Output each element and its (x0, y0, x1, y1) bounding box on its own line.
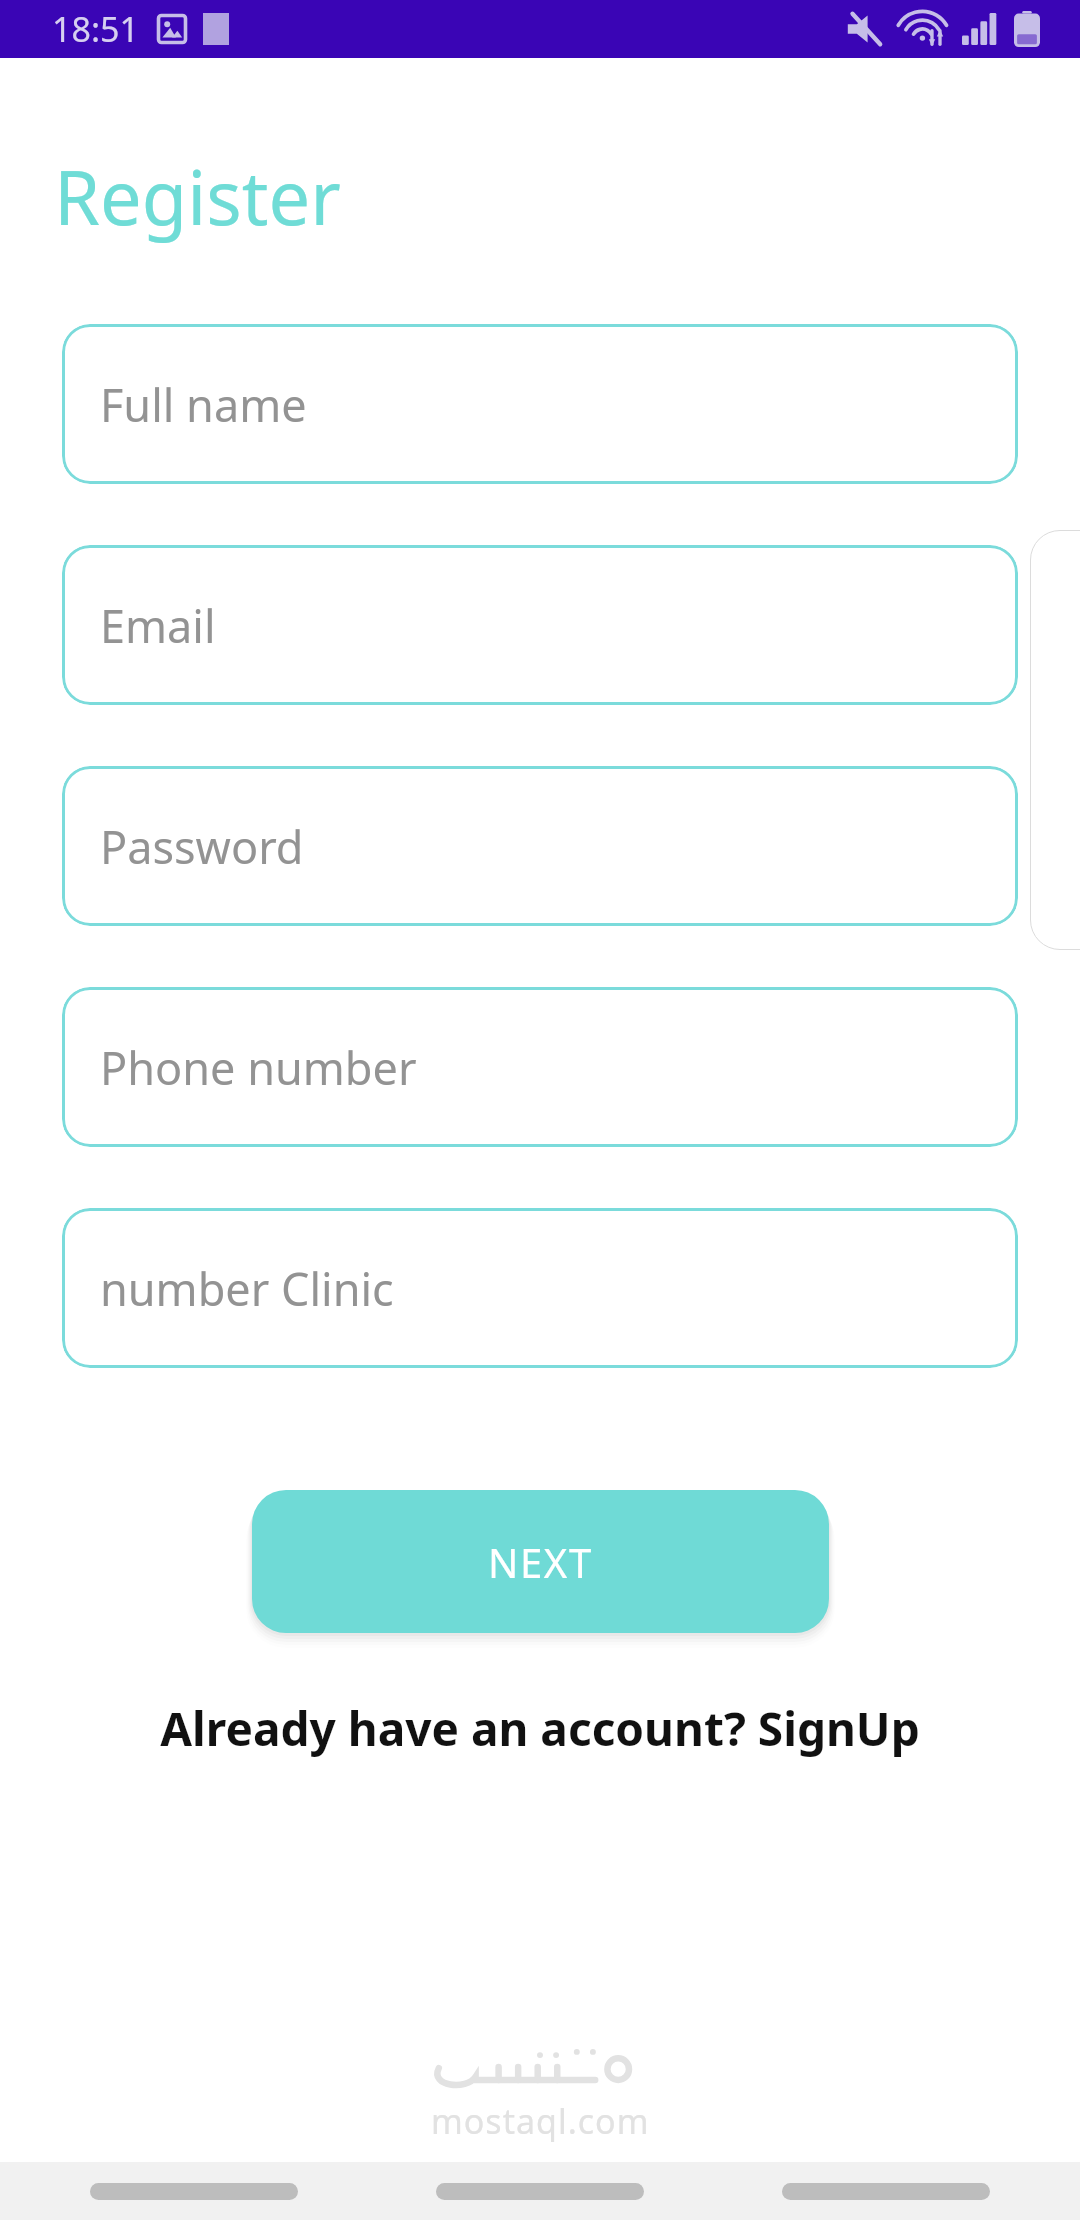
staticText: mostaql.com (431, 2098, 650, 2144)
staticText: Full name (100, 374, 307, 435)
staticText: Password (100, 816, 304, 877)
staticText: number Clinic (100, 1258, 394, 1319)
button[interactable]: Email (62, 545, 1018, 705)
button[interactable]: Password (62, 766, 1018, 926)
staticText: Already have an account? SignUp (160, 1697, 920, 1760)
staticText: Phone number (100, 1037, 417, 1098)
staticText: Email (100, 595, 216, 656)
button[interactable]: Full name (62, 324, 1018, 484)
button[interactable]: Recents (782, 2183, 990, 2200)
button[interactable]: Already have an account? SignUp (0, 1697, 1080, 1760)
button[interactable]: Home (436, 2183, 644, 2200)
button[interactable]: number Clinic (62, 1208, 1018, 1368)
button[interactable]: Phone number (62, 987, 1018, 1147)
button[interactable]: Back (90, 2183, 298, 2200)
staticText: 18:51 (52, 6, 139, 52)
staticText: Register (54, 146, 341, 247)
button[interactable]: NEXT (252, 1490, 829, 1633)
staticText: NEXT (488, 1535, 593, 1589)
